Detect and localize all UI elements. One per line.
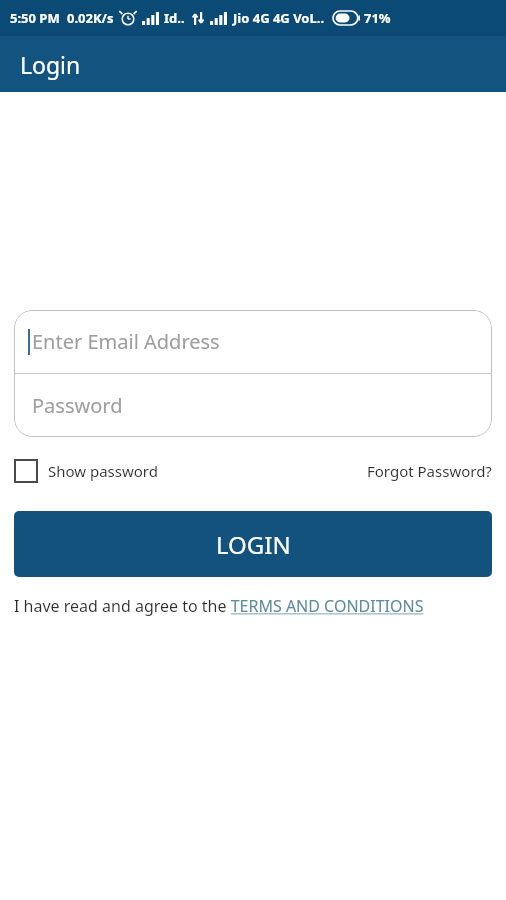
staticText: I have read and agree to the TERMS AND C… (14, 595, 424, 617)
button[interactable]: Forgot Password? (367, 461, 492, 481)
button[interactable]: I have read and agree to the TERMS AND C… (14, 595, 492, 617)
staticText: 0.02K/s (67, 9, 114, 27)
staticText: Login (20, 49, 81, 80)
staticText: Show password (48, 461, 158, 481)
staticText: Forgot Password? (367, 461, 492, 481)
staticText: 5:50 PM (10, 9, 60, 27)
button[interactable]: Enter Email Address (14, 310, 492, 373)
staticText: Enter Email Address (32, 328, 220, 355)
button[interactable]: Show password (14, 459, 158, 483)
button[interactable]: LOGIN (14, 511, 492, 577)
staticText: Password (32, 392, 123, 419)
button[interactable]: Password (14, 374, 492, 437)
staticText: LOGIN (216, 528, 291, 561)
staticText: Jio 4G 4G VoL.. (233, 9, 325, 27)
staticText: 71% (364, 9, 391, 27)
staticText: Id.. (164, 9, 185, 27)
